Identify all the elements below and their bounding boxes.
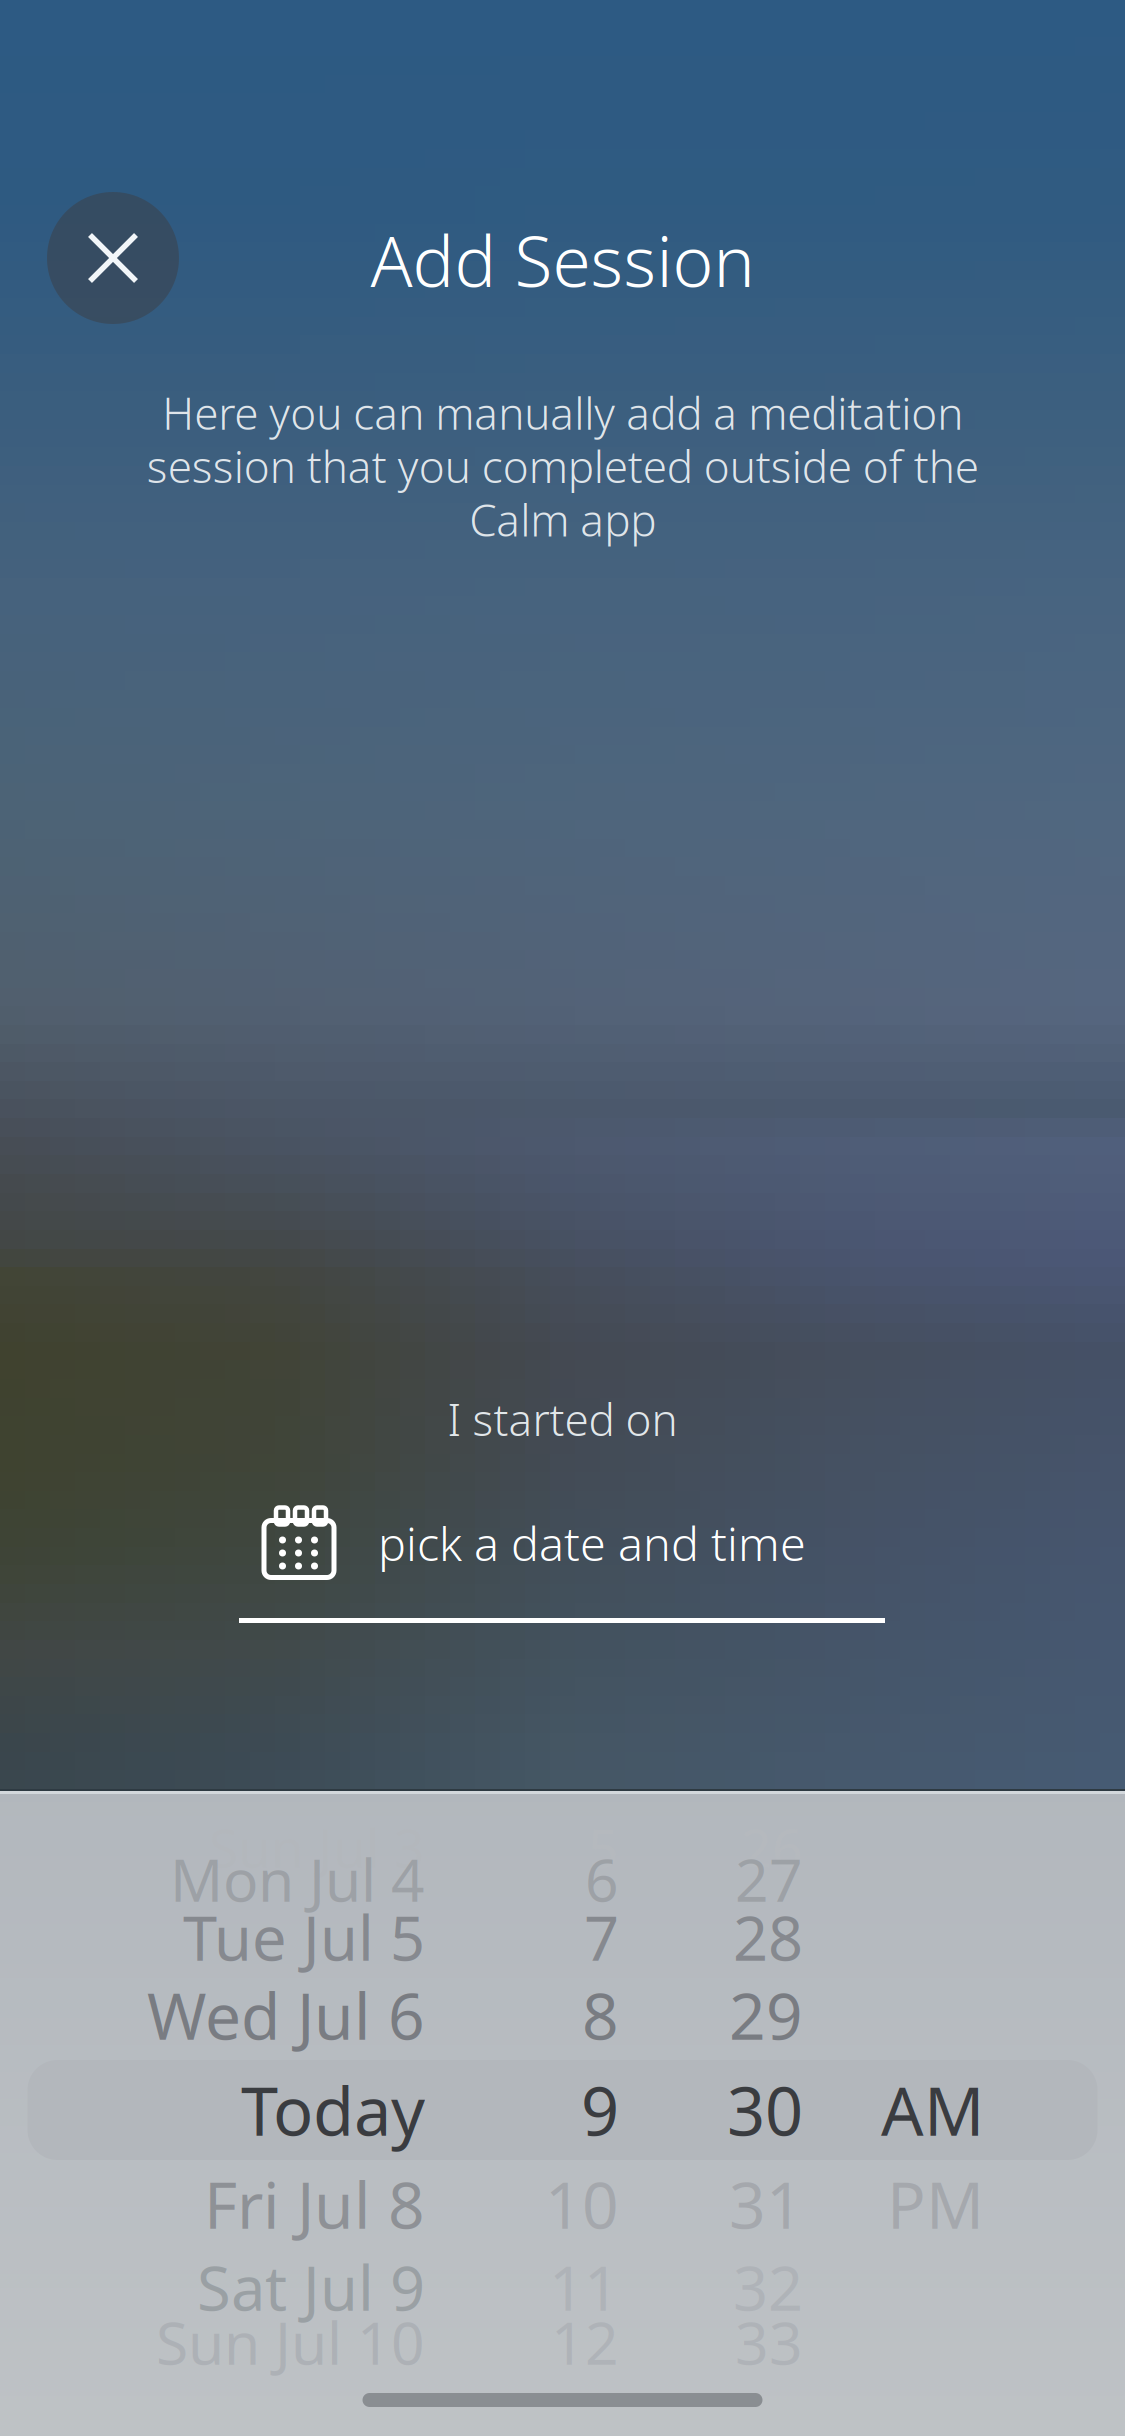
staticText: 26 <box>741 1812 803 1882</box>
staticText: Add Session <box>370 214 754 306</box>
staticText: 8 <box>582 1972 619 2057</box>
staticText: Wed Jul 6 <box>147 1972 425 2057</box>
staticText: Tue Jul 5 <box>183 1896 425 1978</box>
staticText: Sun Jul 3 <box>209 1812 425 1882</box>
staticText: 29 <box>729 1972 803 2057</box>
staticText: pick a date and time <box>378 1512 806 1574</box>
staticText: Today <box>241 2066 425 2154</box>
staticText: 5 <box>588 1812 619 1882</box>
staticText: Mon Jul 4 <box>170 1840 425 1918</box>
staticText: 32 <box>733 2246 803 2328</box>
staticText: Sat Jul 9 <box>197 2246 425 2328</box>
staticText: Sun Jul 10 <box>156 2303 425 2381</box>
staticText: 9 <box>581 2066 619 2154</box>
staticText: 27 <box>735 1840 803 1918</box>
staticText: Here you can manually add a meditation s… <box>146 383 978 549</box>
staticText: PM <box>887 2161 984 2246</box>
button[interactable]: pick a date and time <box>239 1499 887 1649</box>
button[interactable]: Close <box>47 192 179 324</box>
staticText: 6 <box>585 1840 619 1918</box>
staticText: 12 <box>551 2303 619 2381</box>
staticText: 28 <box>733 1896 803 1978</box>
staticText: 33 <box>735 2303 803 2381</box>
staticText: I started on <box>447 1390 677 1448</box>
staticText: 11 <box>549 2246 619 2328</box>
staticText: AM <box>881 2066 984 2154</box>
staticText: 30 <box>727 2066 803 2154</box>
staticText: 10 <box>545 2161 619 2246</box>
staticText: 31 <box>729 2161 803 2246</box>
staticText: 7 <box>584 1896 619 1978</box>
staticText: Fri Jul 8 <box>204 2161 425 2246</box>
